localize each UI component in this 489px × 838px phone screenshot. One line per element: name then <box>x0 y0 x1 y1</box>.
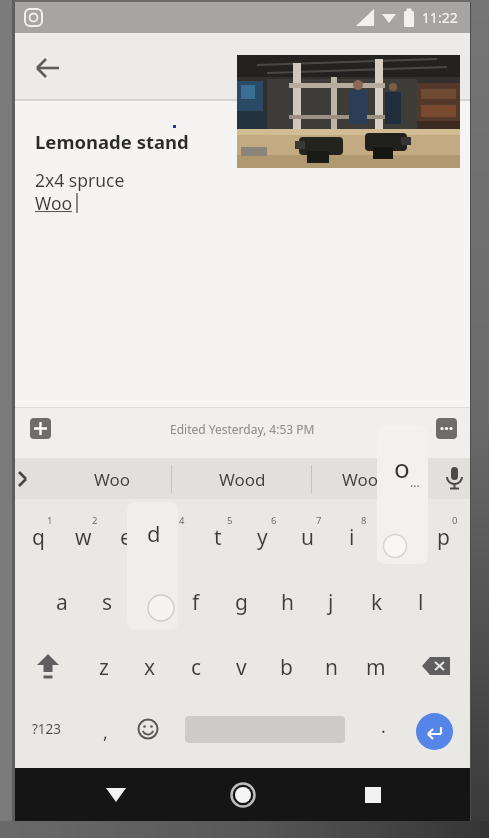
staticText: 4 <box>179 514 185 527</box>
staticText: 1 <box>47 514 53 527</box>
button[interactable]: Woo <box>270 459 450 499</box>
staticText: , <box>103 720 108 745</box>
button[interactable]: Wood <box>152 459 332 499</box>
staticText: f <box>192 588 200 617</box>
staticText: Woo <box>94 468 131 491</box>
staticText: u <box>301 523 314 552</box>
staticText: h <box>281 588 294 617</box>
staticText: 2 <box>92 514 98 527</box>
button[interactable]: p <box>353 517 489 557</box>
button[interactable]: q <box>0 517 128 557</box>
staticText: y <box>257 523 268 552</box>
button[interactable] <box>438 462 470 496</box>
button[interactable] <box>96 774 136 814</box>
staticText: d <box>142 588 155 617</box>
button[interactable]: u <box>217 517 397 557</box>
button[interactable]: x <box>60 647 240 687</box>
button[interactable]: t <box>128 517 308 557</box>
staticText: v <box>236 653 247 682</box>
button[interactable]: j <box>241 582 421 622</box>
button[interactable]: g <box>151 582 331 622</box>
staticText: ... <box>410 474 420 490</box>
button[interactable]: , <box>15 712 195 752</box>
button[interactable] <box>30 50 66 86</box>
staticText: o <box>390 523 403 552</box>
staticText: s <box>102 588 113 617</box>
button[interactable] <box>30 648 66 684</box>
staticText: ?123 <box>32 720 62 738</box>
button[interactable]: k <box>287 582 467 622</box>
button[interactable]: d <box>58 582 238 622</box>
button[interactable]: m <box>286 647 466 687</box>
button[interactable]: . <box>293 706 473 746</box>
staticText: 0 <box>452 514 458 527</box>
button[interactable]: n <box>241 647 421 687</box>
button[interactable]: Woo <box>22 459 202 499</box>
button[interactable]: z <box>14 647 194 687</box>
staticText: Woo <box>342 468 379 491</box>
staticText: w <box>75 523 92 552</box>
button[interactable]: e <box>36 517 216 557</box>
staticText: m <box>366 653 386 682</box>
button[interactable]: f <box>106 582 286 622</box>
staticText: Edited Yesterday, 4:53 PM <box>170 421 315 437</box>
staticText: p <box>437 523 450 552</box>
button[interactable]: r <box>80 517 260 557</box>
button[interactable]: h <box>197 582 377 622</box>
staticText: Woo <box>35 191 73 215</box>
staticText: 2x4 spruce <box>35 168 125 192</box>
button[interactable] <box>353 774 393 814</box>
staticText: i <box>349 523 355 552</box>
button[interactable]: s <box>17 582 197 622</box>
button[interactable] <box>418 650 458 682</box>
staticText: o <box>394 450 410 485</box>
button[interactable] <box>436 418 457 439</box>
button[interactable]: l <box>331 582 489 622</box>
staticText: 8 <box>361 514 367 527</box>
button[interactable] <box>416 713 453 750</box>
staticText: k <box>371 588 383 617</box>
button[interactable]: b <box>196 647 376 687</box>
button[interactable] <box>30 418 51 439</box>
button[interactable]: o <box>306 517 486 557</box>
staticText: b <box>280 653 293 682</box>
staticText: Wood <box>219 468 266 491</box>
button[interactable]: a <box>0 582 152 622</box>
staticText: l <box>418 588 424 617</box>
staticText: x <box>144 653 156 682</box>
button[interactable]: v <box>151 647 331 687</box>
staticText: 6 <box>271 514 277 527</box>
button[interactable]: c <box>106 647 286 687</box>
staticText: . <box>381 714 386 739</box>
staticText: 7 <box>316 514 322 527</box>
button[interactable]: w <box>0 517 173 557</box>
button[interactable] <box>223 774 263 814</box>
button[interactable]: i <box>262 517 442 557</box>
button[interactable] <box>237 55 460 168</box>
staticText: c <box>191 653 202 682</box>
staticText: a <box>56 588 68 617</box>
staticText: Lemonade stand <box>35 129 189 154</box>
staticText: j <box>328 588 334 617</box>
staticText: z <box>99 653 109 682</box>
staticText: d <box>147 518 161 548</box>
button[interactable] <box>14 462 42 496</box>
staticText: q <box>32 523 45 552</box>
staticText: g <box>235 588 248 617</box>
staticText: t <box>214 523 222 552</box>
button[interactable]: y <box>172 517 352 557</box>
button[interactable]: ?123 <box>0 709 137 749</box>
staticText: e <box>120 523 132 552</box>
staticText: 11:22 <box>422 8 458 27</box>
button[interactable] <box>133 714 163 744</box>
staticText: 5 <box>227 514 233 527</box>
staticText: n <box>325 653 338 682</box>
